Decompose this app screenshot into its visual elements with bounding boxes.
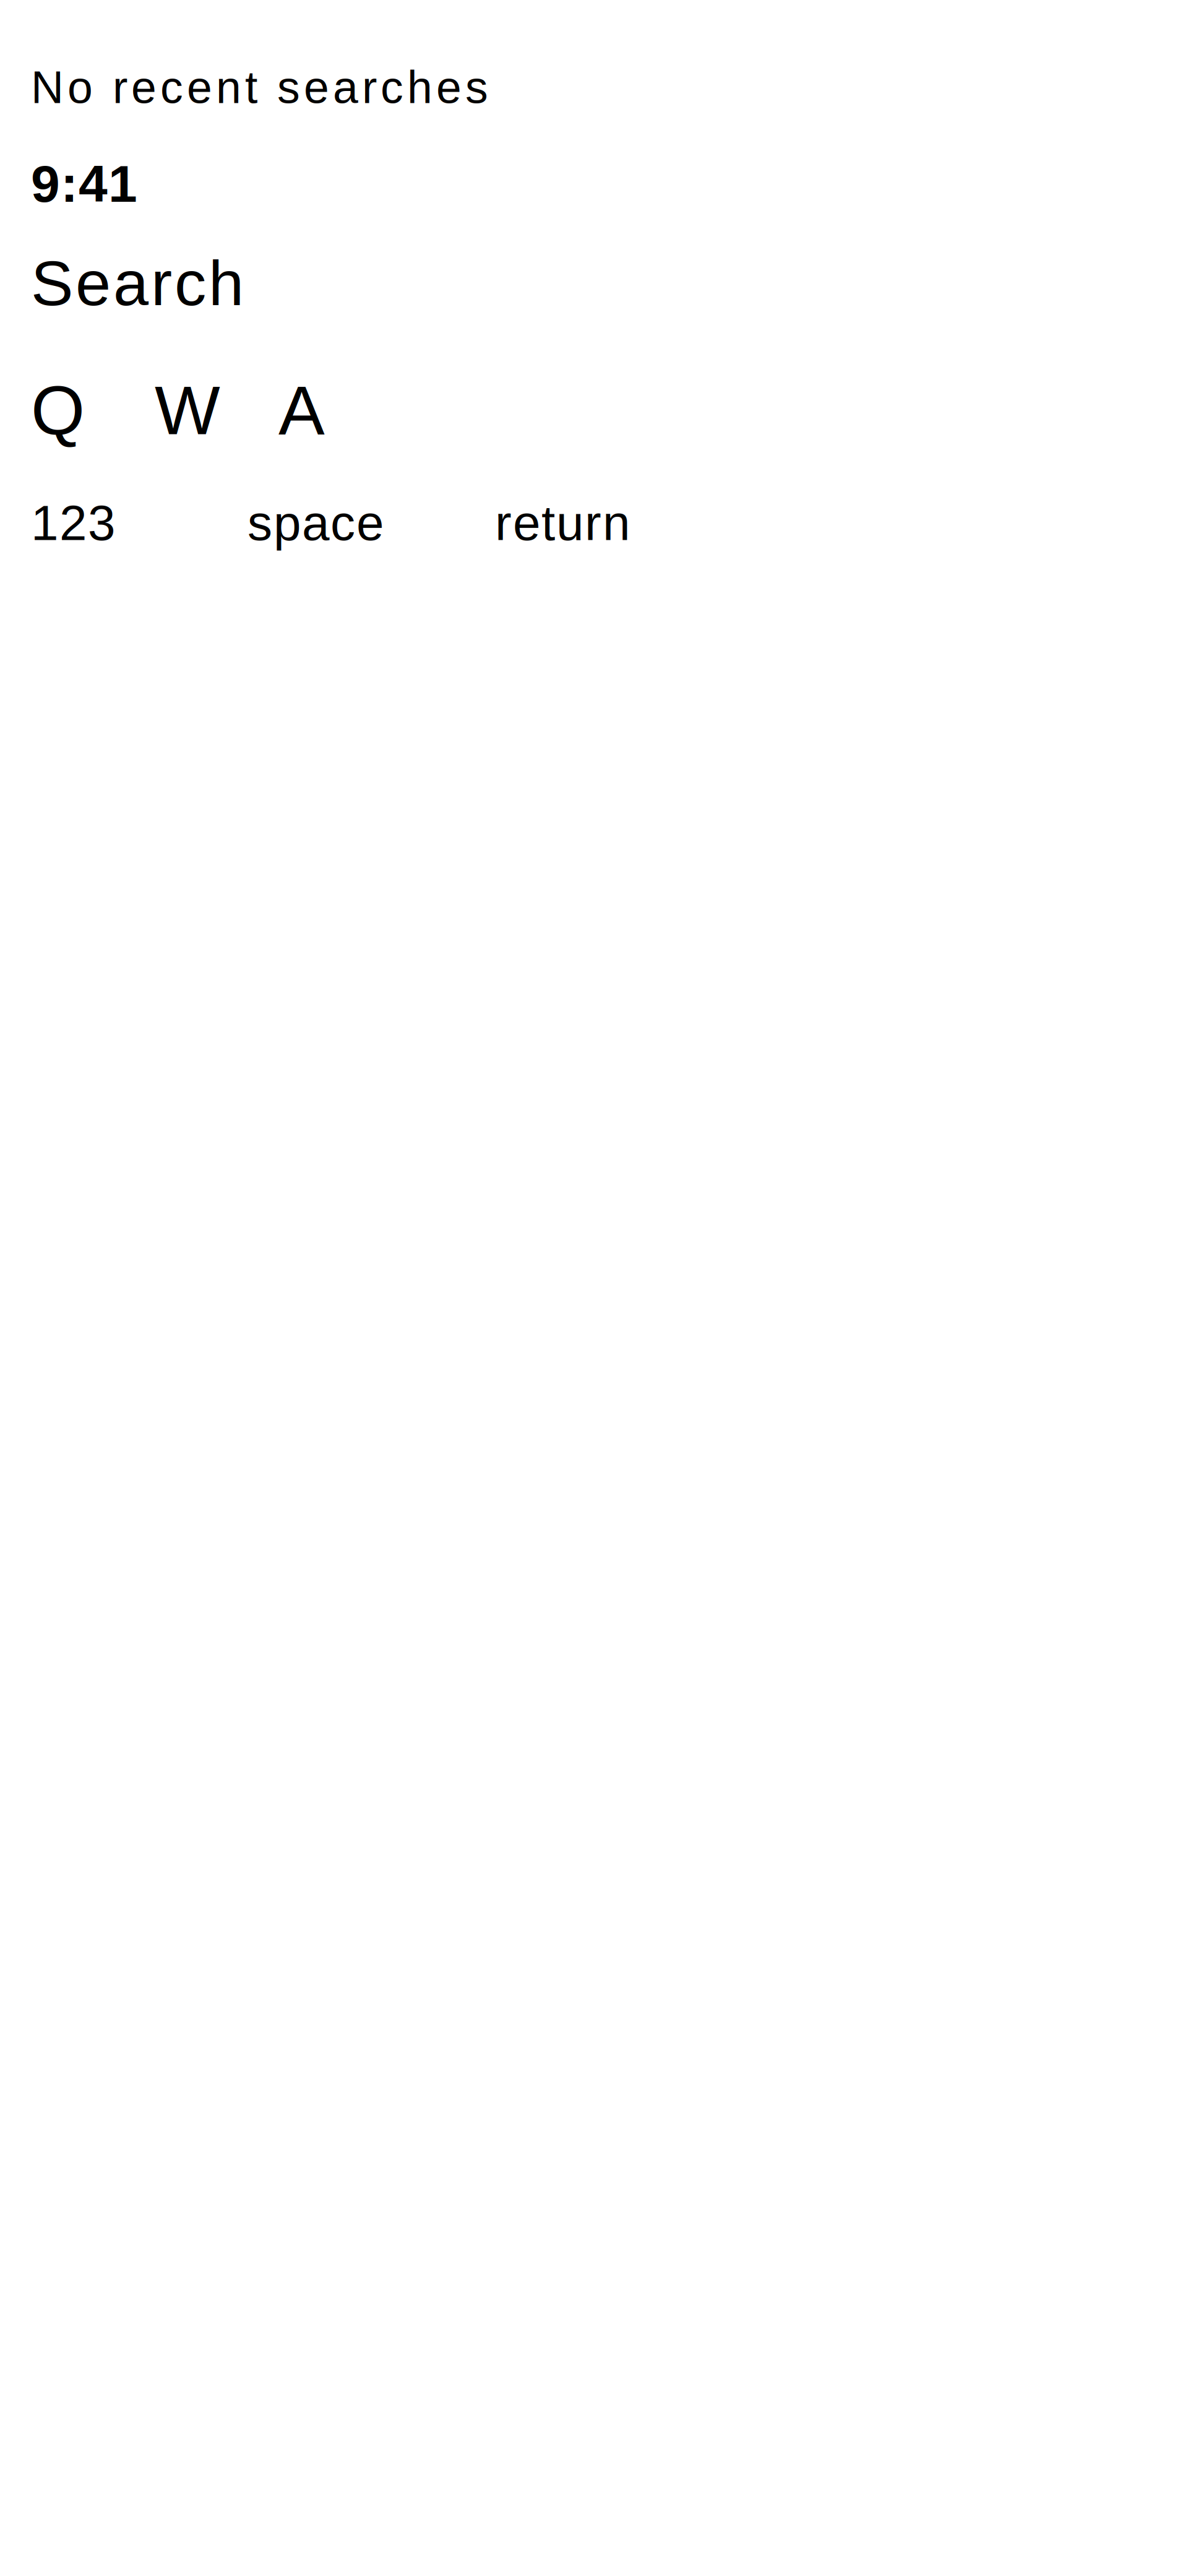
- staticText: No recent searches: [31, 62, 488, 113]
- staticText: 123: [31, 495, 115, 550]
- staticText: W: [155, 371, 220, 449]
- staticText: return: [495, 495, 630, 550]
- staticText: Search: [31, 248, 244, 319]
- staticText: space: [247, 495, 384, 550]
- staticText: 9:41: [31, 155, 137, 213]
- staticText: Q: [31, 371, 85, 449]
- staticText: A: [278, 371, 325, 449]
